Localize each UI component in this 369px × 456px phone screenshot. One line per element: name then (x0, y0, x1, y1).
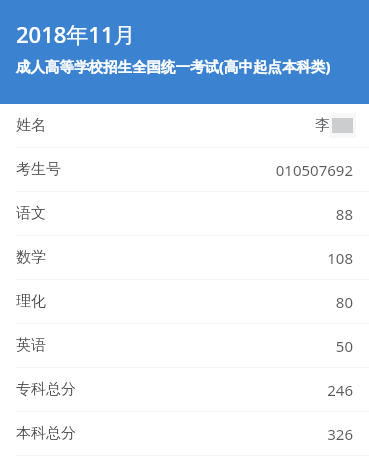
button[interactable]: 姓名 (0, 104, 369, 147)
staticText: 语文 (16, 204, 46, 223)
staticText: 50 (335, 336, 353, 356)
button[interactable]: 英语 (0, 324, 369, 367)
staticText: 80 (335, 292, 353, 312)
staticText: 326 (327, 424, 353, 444)
staticText: 姓名 (16, 116, 46, 135)
button[interactable]: 本科总分 (0, 412, 369, 455)
staticText: 2018年11月 (16, 19, 136, 49)
staticText: 李 (315, 116, 330, 135)
staticText: 108 (327, 248, 353, 268)
staticText: 专科总分 (16, 380, 76, 399)
staticText: 成人高等学校招生全国统一考试(高中起点本科类) (16, 56, 331, 76)
button[interactable]: 理化 (0, 280, 369, 323)
button[interactable]: 专科总分 (0, 368, 369, 411)
staticText: 010507692 (275, 160, 353, 180)
button[interactable]: 考生号 (0, 148, 369, 191)
button[interactable]: 语文 (0, 192, 369, 235)
staticText: 理化 (16, 292, 46, 311)
staticText: 246 (327, 380, 353, 400)
button[interactable]: 数学 (0, 236, 369, 279)
staticText: 英语 (16, 336, 46, 355)
staticText: 88 (335, 204, 353, 224)
staticText: 数学 (16, 248, 46, 267)
staticText: 考生号 (16, 160, 61, 179)
staticText: 本科总分 (16, 424, 76, 443)
